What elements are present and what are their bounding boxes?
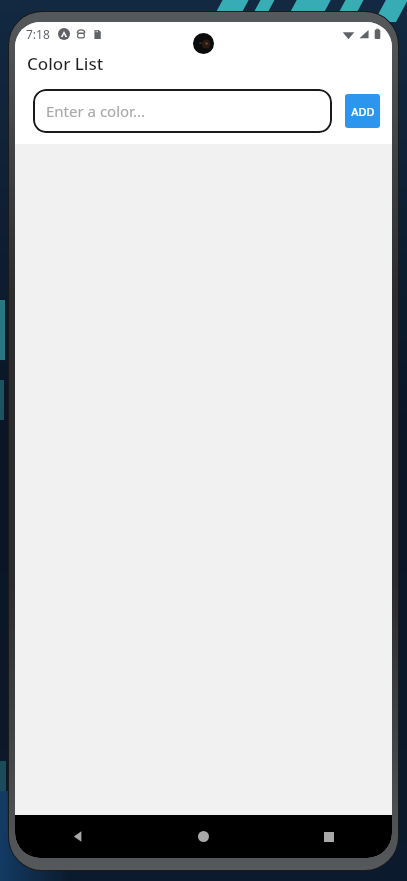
staticText: Enter a color... (46, 101, 145, 121)
button[interactable]: Recents (266, 815, 392, 858)
staticText: Color List (27, 52, 104, 75)
staticText: ADD (351, 104, 375, 119)
button[interactable]: Back (15, 815, 140, 858)
button[interactable]: Enter a color... (33, 89, 332, 133)
button[interactable]: ADD (345, 94, 380, 128)
button[interactable]: Home (140, 815, 266, 858)
staticText: 7:18 (26, 26, 50, 42)
